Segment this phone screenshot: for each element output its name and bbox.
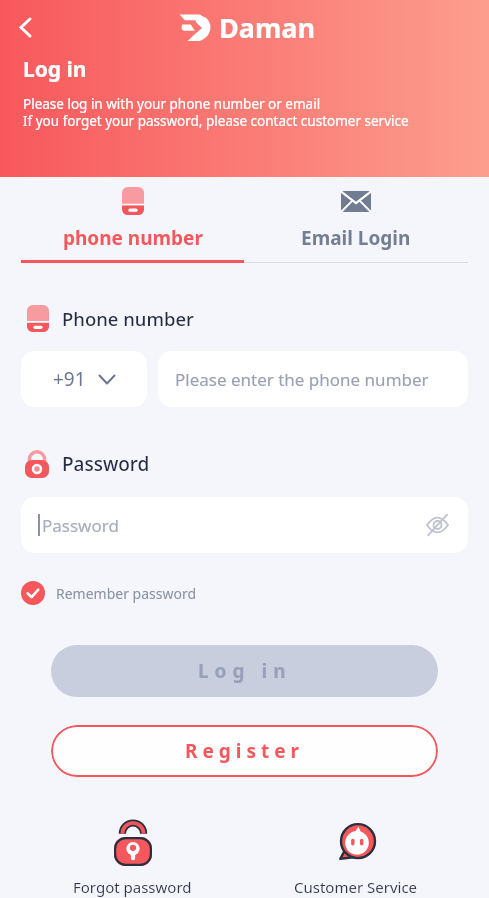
button[interactable]: Register — [51, 725, 438, 777]
staticText: Daman — [219, 9, 315, 46]
button[interactable]: Password — [21, 497, 468, 553]
staticText: Phone number — [62, 306, 194, 331]
button[interactable]: Please enter the phone number — [158, 351, 468, 407]
staticText: +91 — [53, 366, 86, 392]
staticText: Password — [62, 451, 150, 477]
button[interactable]: Email Login — [244, 177, 468, 251]
button[interactable]: Log in — [51, 645, 438, 697]
staticText: Log in — [23, 55, 87, 84]
button[interactable]: phone number — [21, 177, 244, 251]
staticText: Please log in with your phone number or … — [23, 95, 409, 130]
button[interactable]: Remember password — [21, 581, 197, 605]
staticText: Email Login — [301, 225, 411, 251]
staticText: Register — [185, 738, 305, 764]
staticText: Log in — [198, 658, 292, 684]
staticText: Customer Service — [294, 877, 418, 897]
staticText: phone number — [63, 225, 203, 251]
staticText: Please enter the phone number — [175, 368, 429, 391]
staticText: Password — [42, 514, 119, 537]
button[interactable]: Forgot password — [21, 820, 244, 897]
staticText: Remember password — [56, 584, 197, 603]
button[interactable] — [6, 8, 44, 46]
button[interactable]: Customer Service — [244, 820, 468, 897]
staticText: Forgot password — [73, 877, 192, 897]
button[interactable]: +91 — [21, 351, 147, 407]
